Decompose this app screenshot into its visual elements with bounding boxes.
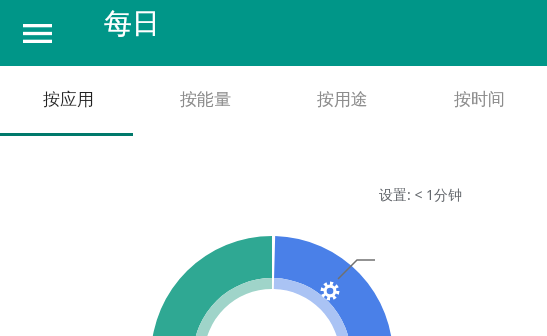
staticText: 设置: < 1分钟 bbox=[379, 185, 463, 204]
staticText: 按能量 bbox=[180, 89, 231, 110]
staticText: 按时间 bbox=[454, 89, 505, 110]
button[interactable]: Open navigation menu bbox=[9, 8, 66, 58]
button[interactable]: 按用途 bbox=[274, 66, 411, 133]
button[interactable]: 按时间 bbox=[411, 66, 547, 133]
button[interactable]: 按能量 bbox=[137, 66, 274, 133]
staticText: 每日 bbox=[104, 6, 160, 41]
staticText: 按用途 bbox=[317, 89, 368, 110]
staticText: 按应用 bbox=[43, 89, 94, 110]
button[interactable]: 按应用 bbox=[0, 66, 137, 133]
